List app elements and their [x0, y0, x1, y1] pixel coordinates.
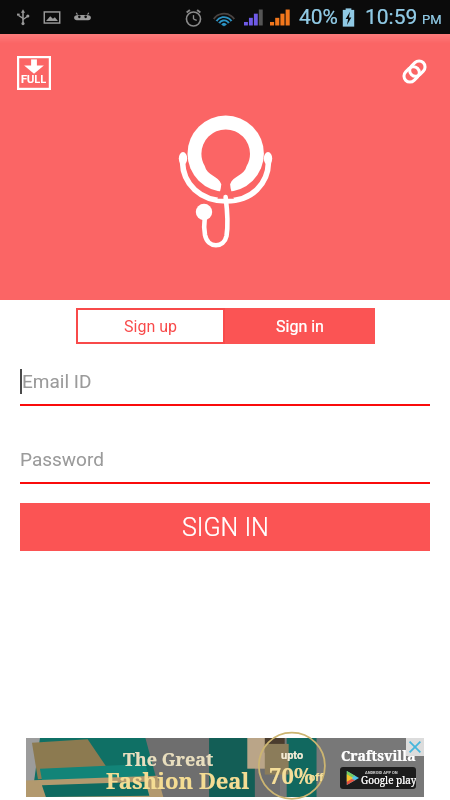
staticText: Email ID: [22, 370, 92, 392]
button[interactable]: Password: [20, 442, 430, 476]
button[interactable]: Close advertisement: [406, 738, 424, 756]
staticText: Fashion Deal: [106, 765, 250, 795]
button[interactable]: Download full version: [17, 56, 51, 90]
staticText: The Great: [123, 747, 214, 772]
button[interactable]: Email ID: [20, 364, 430, 398]
staticText: Craftsvilla: [341, 746, 416, 765]
button[interactable]: Advertisement: The Great Fashion Deal: [26, 738, 424, 797]
staticText: Sign in: [276, 317, 324, 336]
staticText: 70%: [269, 760, 314, 790]
staticText: Sign up: [124, 317, 177, 336]
staticText: ANDROID APP ON: [365, 770, 398, 775]
staticText: 40%: [299, 5, 338, 30]
button[interactable]: Link: [400, 57, 429, 86]
staticText: upto: [281, 749, 304, 762]
staticText: PM: [422, 12, 442, 27]
button[interactable]: Sign up: [76, 308, 225, 344]
button[interactable]: Get it on Google Play: [340, 767, 416, 789]
staticText: Google play: [361, 773, 416, 787]
staticText: FULL: [21, 73, 47, 86]
button[interactable]: SIGN IN: [20, 503, 430, 551]
staticText: off: [309, 771, 324, 784]
staticText: Password: [20, 448, 104, 470]
staticText: SIGN IN: [182, 513, 269, 542]
button[interactable]: Sign in: [225, 308, 375, 344]
staticText: 10:59: [365, 5, 418, 30]
